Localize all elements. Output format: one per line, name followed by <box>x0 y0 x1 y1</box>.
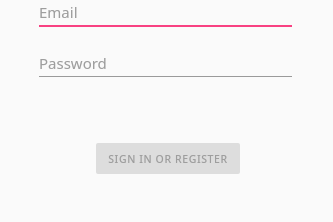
button[interactable]: Email <box>39 2 292 24</box>
staticText: Email <box>39 2 78 22</box>
staticText: SIGN IN OR REGISTER <box>108 152 228 166</box>
button[interactable]: SIGN IN OR REGISTER <box>96 143 240 174</box>
button[interactable]: Password <box>39 53 292 74</box>
staticText: Password <box>39 53 107 73</box>
